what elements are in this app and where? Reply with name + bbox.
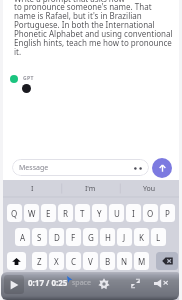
staticText: E bbox=[46, 208, 51, 219]
button[interactable]: K bbox=[134, 228, 149, 246]
staticText: K bbox=[139, 232, 144, 243]
staticText: P bbox=[165, 208, 170, 219]
button[interactable]: M bbox=[134, 252, 149, 270]
button[interactable]: F bbox=[66, 228, 81, 246]
button[interactable]: X bbox=[49, 252, 64, 270]
button[interactable]: T bbox=[75, 204, 90, 222]
staticText: GPT bbox=[23, 75, 34, 82]
staticText: W bbox=[28, 208, 36, 219]
button[interactable]: J bbox=[117, 228, 132, 246]
button[interactable]: E bbox=[41, 204, 56, 222]
staticText: N bbox=[121, 256, 128, 267]
staticText: T bbox=[80, 208, 85, 219]
staticText: Z bbox=[37, 256, 42, 267]
staticText: H bbox=[105, 232, 111, 243]
staticText: Q bbox=[11, 208, 18, 219]
staticText: R bbox=[63, 208, 68, 219]
button[interactable]: P bbox=[160, 204, 175, 222]
button[interactable]: Backspace bbox=[156, 252, 178, 270]
button[interactable]: O bbox=[143, 204, 158, 222]
button[interactable]: V bbox=[83, 252, 98, 270]
staticText: Write a prompt that asks how to pronounc… bbox=[14, 0, 172, 57]
staticText: space bbox=[72, 278, 91, 288]
staticText: O bbox=[147, 208, 154, 219]
button[interactable]: R bbox=[58, 204, 73, 222]
staticText: F bbox=[71, 232, 76, 243]
staticText: L bbox=[156, 232, 161, 243]
button[interactable]: W bbox=[24, 204, 39, 222]
staticText: I bbox=[132, 208, 135, 219]
staticText: 0:17 / 0:25 bbox=[28, 277, 68, 288]
staticText: V bbox=[88, 256, 93, 267]
staticText: B bbox=[105, 256, 111, 267]
button[interactable]: H bbox=[100, 228, 115, 246]
staticText: Message bbox=[19, 163, 49, 173]
other: Attach bbox=[133, 164, 143, 172]
staticText: You bbox=[143, 184, 156, 194]
staticText: Y bbox=[97, 208, 102, 219]
staticText: C bbox=[71, 256, 77, 267]
staticText: I'm bbox=[85, 184, 96, 194]
button[interactable]: A bbox=[15, 228, 30, 246]
staticText: X bbox=[54, 256, 59, 267]
staticText: M bbox=[138, 256, 146, 267]
staticText: D bbox=[54, 232, 60, 243]
button[interactable]: S bbox=[32, 228, 47, 246]
button[interactable]: N bbox=[117, 252, 132, 270]
button[interactable]: Y bbox=[92, 204, 107, 222]
staticText: U bbox=[114, 208, 120, 219]
button[interactable]: I bbox=[3, 180, 61, 197]
staticText: G bbox=[88, 232, 94, 243]
button[interactable]: Send bbox=[152, 158, 172, 178]
staticText: S bbox=[37, 232, 42, 243]
button[interactable]: Play bbox=[4, 275, 24, 294]
button[interactable]: B bbox=[100, 252, 115, 270]
button[interactable]: I'm bbox=[61, 180, 120, 197]
button[interactable]: G bbox=[83, 228, 98, 246]
button[interactable]: U bbox=[109, 204, 124, 222]
button[interactable]: Q bbox=[7, 204, 22, 222]
button[interactable]: Shift bbox=[7, 252, 26, 270]
button[interactable]: You bbox=[120, 180, 179, 197]
button[interactable]: C bbox=[66, 252, 81, 270]
staticText: A bbox=[20, 232, 26, 243]
button[interactable]: Mute bbox=[152, 275, 171, 291]
staticText: J bbox=[123, 232, 126, 243]
staticText: I bbox=[31, 184, 34, 194]
button[interactable]: Settings bbox=[95, 275, 113, 293]
button[interactable]: I bbox=[126, 204, 141, 222]
button[interactable]: Message bbox=[12, 159, 149, 176]
button[interactable]: Z bbox=[32, 252, 47, 270]
button[interactable]: D bbox=[49, 228, 64, 246]
button[interactable]: Fullscreen bbox=[127, 275, 143, 291]
button[interactable]: L bbox=[151, 228, 166, 246]
